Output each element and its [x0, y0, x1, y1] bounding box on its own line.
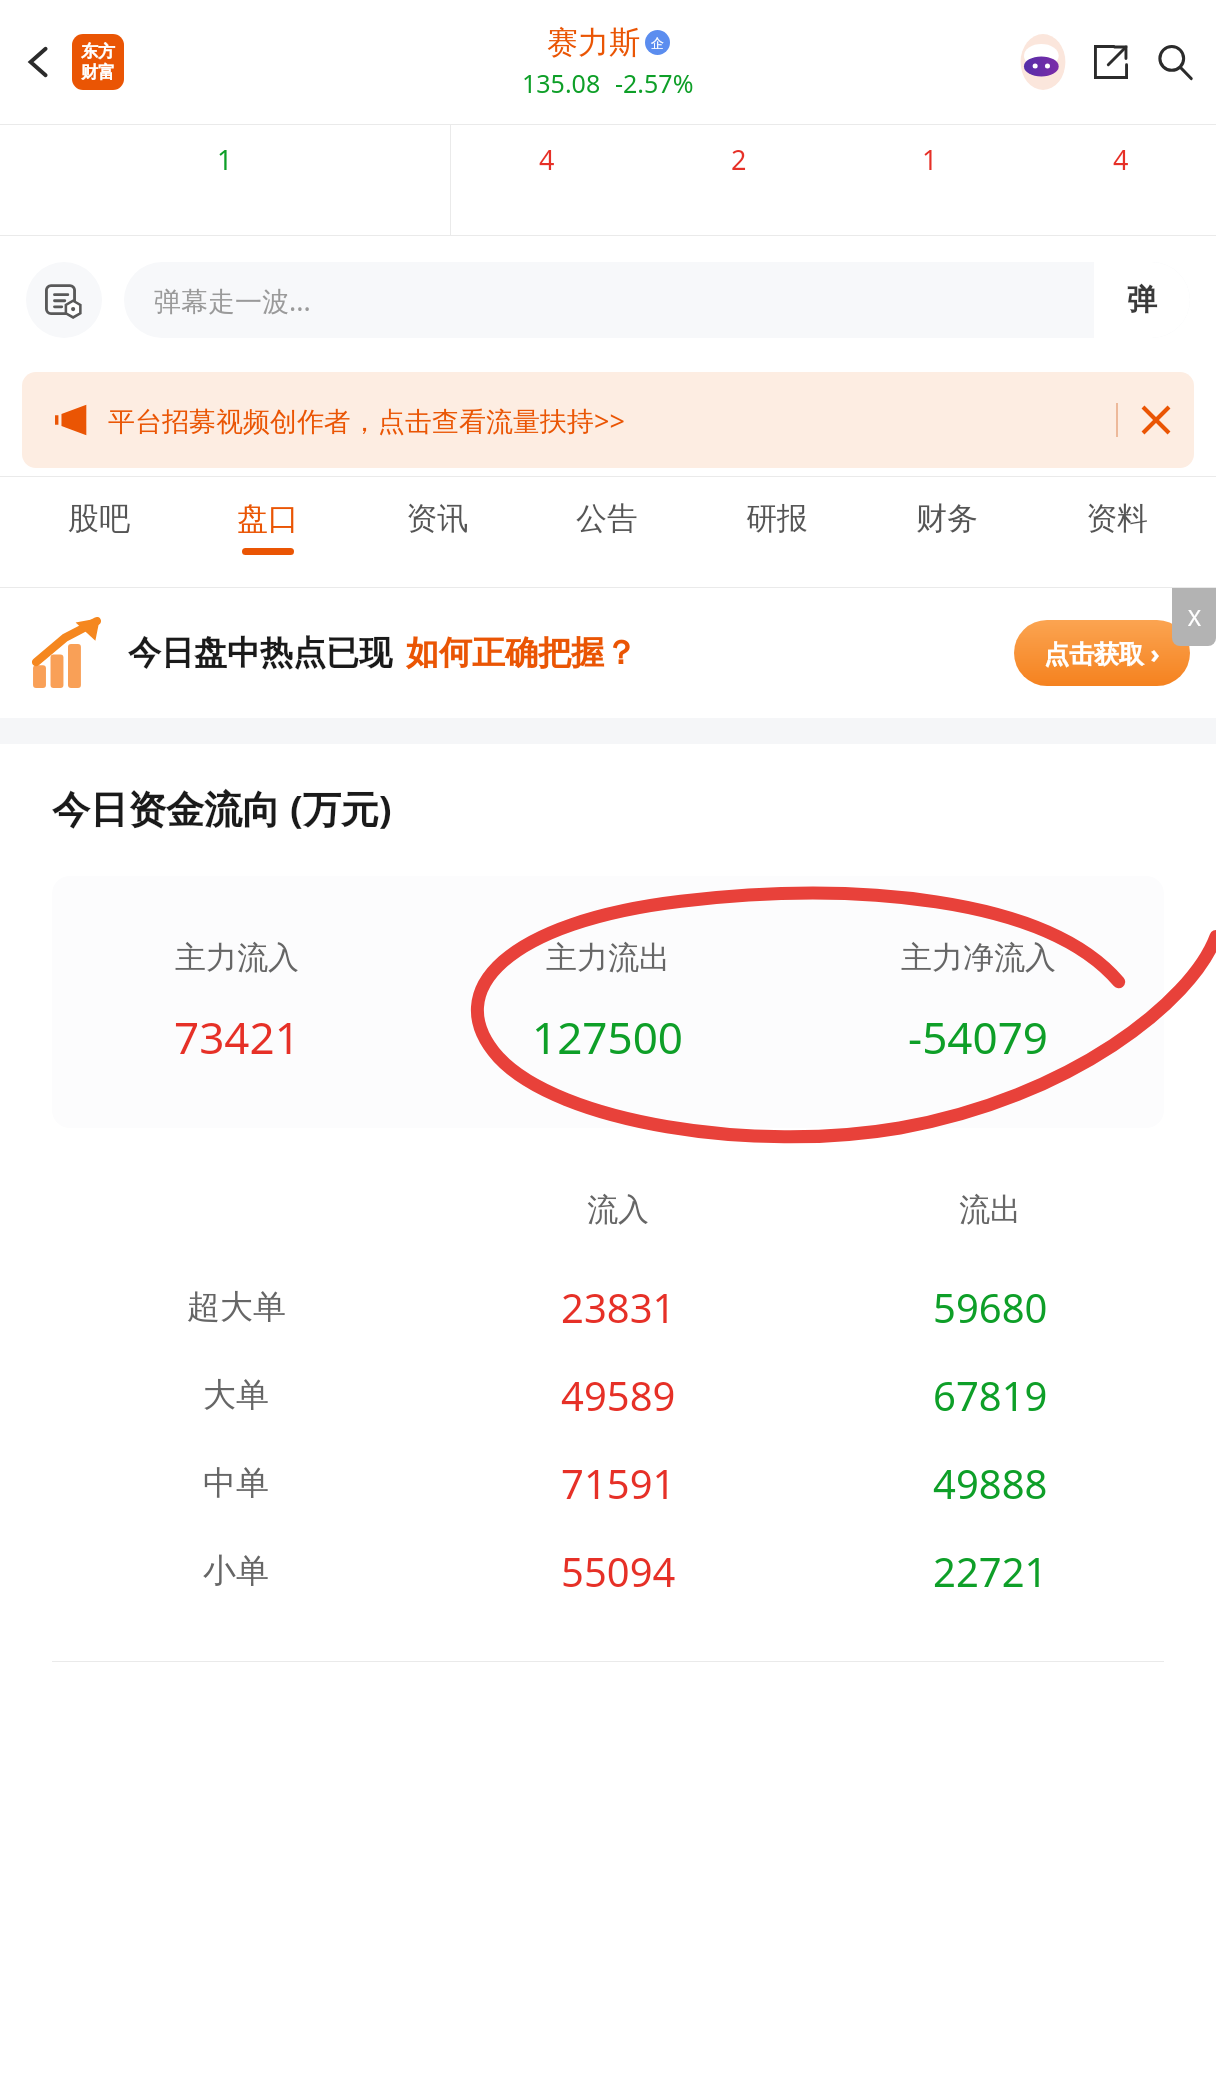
- staticText: 盘口: [237, 499, 299, 538]
- staticText: 平台招募视频创作者，点击查看流量扶持>>: [108, 402, 625, 439]
- staticText: X: [1188, 602, 1201, 632]
- staticText: 135.08: [522, 66, 601, 100]
- staticText: 127500: [532, 1007, 684, 1067]
- button[interactable]: 今日盘中热点已现: [0, 588, 1216, 718]
- staticText: 小单: [203, 1550, 269, 1592]
- staticText: 大单: [203, 1374, 269, 1416]
- staticText: 资料: [1086, 499, 1148, 538]
- button[interactable]: 平台招募视频创作者，点击查看流量扶持>>: [22, 372, 1194, 468]
- staticText: 东方: [81, 41, 115, 62]
- button[interactable]: Search: [1144, 31, 1206, 93]
- staticText: 财务: [916, 499, 978, 538]
- button[interactable]: Close: [1118, 372, 1194, 468]
- staticText: 73421: [174, 1007, 300, 1067]
- staticText: 流入: [587, 1190, 649, 1229]
- button[interactable]: 盘口: [183, 477, 352, 587]
- staticText: 企: [651, 35, 664, 51]
- staticText: 弹: [1127, 281, 1157, 319]
- button[interactable]: 资讯: [352, 477, 522, 587]
- staticText: 弹幕走一波...: [154, 282, 1094, 319]
- staticText: 研报: [746, 499, 808, 538]
- button[interactable]: 研报: [692, 477, 862, 587]
- staticText: 49888: [933, 1456, 1048, 1510]
- staticText: 2: [731, 141, 747, 178]
- button[interactable]: 小单: [40, 1527, 1176, 1615]
- staticText: 点击获取 ›: [1044, 636, 1160, 670]
- staticText: 赛力斯: [547, 23, 640, 62]
- staticText: -54079: [908, 1007, 1049, 1067]
- staticText: 股吧: [68, 499, 130, 538]
- staticText: 资讯: [406, 499, 468, 538]
- button[interactable]: AI assistant: [1012, 31, 1074, 93]
- button[interactable]: 大单: [40, 1351, 1176, 1439]
- staticText: 1: [217, 141, 233, 178]
- staticText: 超大单: [187, 1286, 286, 1328]
- button[interactable]: Share: [1080, 31, 1142, 93]
- staticText: 55094: [561, 1544, 676, 1598]
- staticText: 主力流入: [175, 938, 299, 977]
- staticText: 23831: [561, 1280, 676, 1334]
- button[interactable]: 弹幕走一波...: [124, 262, 1190, 338]
- button[interactable]: East Money: [72, 34, 124, 90]
- staticText: 1: [922, 141, 938, 178]
- button[interactable]: 主力流入: [52, 876, 1164, 1128]
- staticText: 今日盘中热点已现: [128, 632, 392, 674]
- staticText: 公告: [576, 499, 638, 538]
- staticText: 67819: [933, 1368, 1048, 1422]
- button[interactable]: 超大单: [40, 1263, 1176, 1351]
- staticText: 4: [539, 141, 555, 178]
- button[interactable]: Close ad: [1172, 588, 1216, 646]
- staticText: 如何正确把握？: [406, 632, 637, 674]
- button[interactable]: 财务: [862, 477, 1032, 587]
- staticText: 中单: [203, 1462, 269, 1504]
- staticText: 4: [1113, 141, 1129, 178]
- button[interactable]: 资料: [1032, 477, 1202, 587]
- button[interactable]: 点击获取 ›: [1014, 620, 1190, 686]
- button[interactable]: 公告: [522, 477, 692, 587]
- staticText: 主力流出: [546, 938, 670, 977]
- button[interactable]: 股吧: [14, 477, 183, 587]
- staticText: -2.57%: [615, 66, 694, 100]
- staticText: 主力净流入: [901, 938, 1056, 977]
- button[interactable]: Back: [8, 31, 70, 93]
- staticText: 59680: [933, 1280, 1048, 1334]
- button[interactable]: 中单: [40, 1439, 1176, 1527]
- button[interactable]: Notes: [26, 262, 102, 338]
- staticText: 财富: [81, 62, 115, 83]
- staticText: 22721: [933, 1544, 1048, 1598]
- staticText: 71591: [561, 1456, 676, 1510]
- staticText: 流出: [959, 1190, 1021, 1229]
- staticText: 今日资金流向 (万元): [52, 782, 392, 834]
- staticText: 49589: [561, 1368, 676, 1422]
